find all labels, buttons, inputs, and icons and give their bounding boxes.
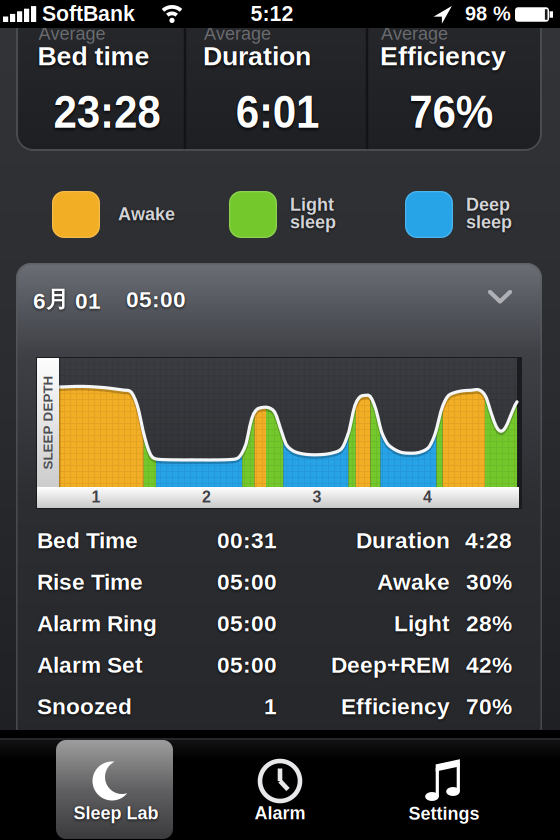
- staticText: sleep: [466, 212, 512, 232]
- staticText: 28%: [466, 611, 512, 636]
- staticText: 2: [202, 488, 211, 506]
- staticText: 05:00: [217, 652, 277, 678]
- staticText: Deep: [466, 194, 510, 214]
- staticText: Rise Time: [37, 569, 143, 595]
- staticText: 05:00: [126, 287, 186, 312]
- staticText: 1: [264, 694, 277, 719]
- staticText: 6月 01: [33, 285, 101, 314]
- staticText: 76%: [406, 87, 496, 137]
- staticText: Deep+REM: [331, 652, 450, 678]
- staticText: Duration: [203, 41, 311, 71]
- staticText: Average: [381, 23, 448, 43]
- staticText: 4: [423, 488, 432, 506]
- staticText: 6:01: [232, 87, 322, 137]
- button[interactable]: Alarm: [220, 730, 340, 840]
- staticText: 5:12: [250, 2, 293, 25]
- staticText: Bed time: [37, 41, 149, 71]
- staticText: Light: [394, 611, 450, 636]
- staticText: Settings: [408, 803, 479, 823]
- staticText: Alarm: [254, 803, 305, 823]
- staticText: Sleep Lab: [73, 803, 158, 823]
- button[interactable]: Sleep Lab: [56, 740, 173, 839]
- staticText: 05:00: [217, 611, 277, 636]
- staticText: Snoozed: [37, 694, 132, 719]
- staticText: 23:28: [49, 87, 164, 137]
- staticText: SoftBank: [42, 2, 135, 25]
- staticText: 05:00: [217, 569, 277, 595]
- staticText: sleep: [290, 212, 336, 232]
- staticText: Efficiency: [341, 694, 450, 719]
- staticText: 30%: [466, 569, 512, 595]
- staticText: Average: [38, 23, 105, 43]
- staticText: 1: [91, 488, 100, 506]
- staticText: SLEEP DEPTH: [1, 415, 95, 430]
- staticText: Alarm Ring: [37, 611, 157, 636]
- staticText: 3: [312, 488, 321, 506]
- staticText: 00:31: [217, 528, 277, 553]
- staticText: 70%: [466, 694, 512, 719]
- staticText: Light: [290, 194, 334, 214]
- staticText: Bed Time: [37, 528, 138, 553]
- staticText: Efficiency: [380, 41, 506, 71]
- staticText: 98 %: [465, 2, 511, 25]
- staticText: Duration: [356, 528, 450, 553]
- button[interactable]: Settings: [384, 730, 504, 840]
- staticText: Awake: [118, 204, 175, 224]
- staticText: Alarm Set: [37, 652, 143, 678]
- staticText: Average: [204, 23, 271, 43]
- staticText: 42%: [466, 652, 512, 678]
- button[interactable]: Select day: [16, 263, 542, 333]
- staticText: Awake: [377, 569, 450, 595]
- staticText: 4:28: [465, 528, 512, 553]
